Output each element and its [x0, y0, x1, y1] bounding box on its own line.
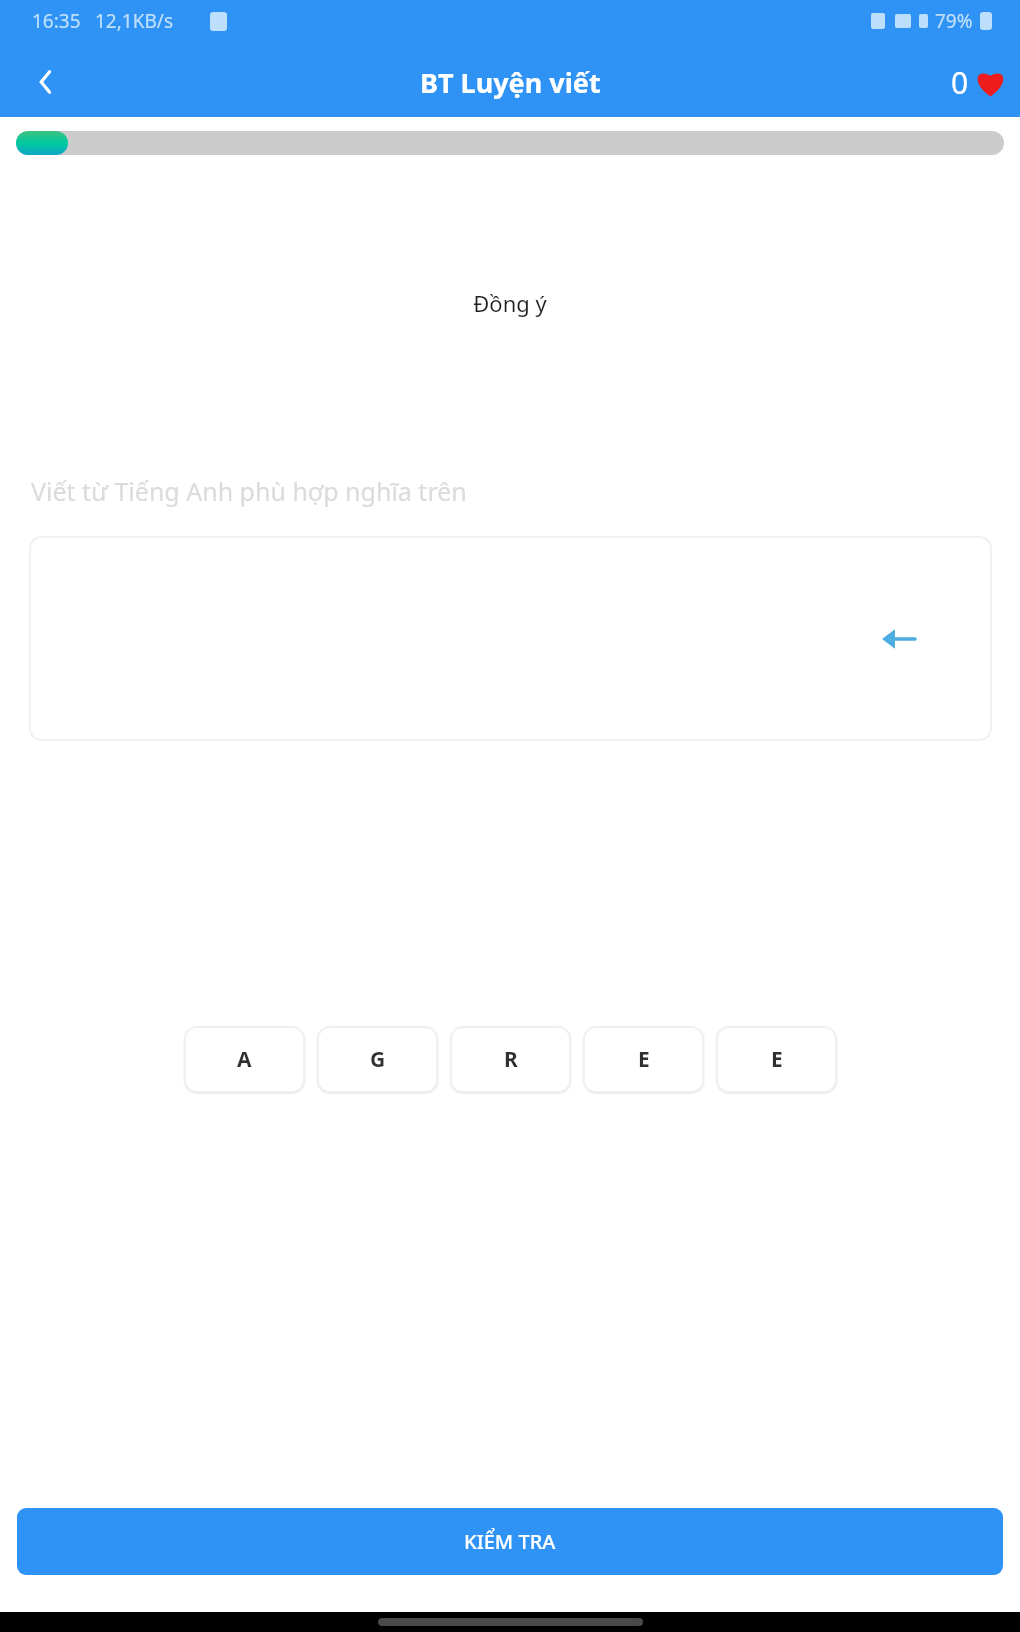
button[interactable]: R	[450, 1026, 571, 1093]
staticText: 0	[951, 62, 969, 103]
staticText: R	[504, 1045, 518, 1074]
button[interactable]: Backspace	[872, 613, 924, 665]
staticText: E	[771, 1045, 783, 1074]
button[interactable]: 0	[951, 62, 1006, 103]
staticText: BT Luyện viết	[420, 64, 601, 101]
staticText: E	[638, 1045, 650, 1074]
button[interactable]: E	[716, 1026, 837, 1093]
button[interactable]: G	[317, 1026, 438, 1093]
button[interactable]: KIỂM TRA	[17, 1508, 1003, 1575]
staticText: G	[370, 1045, 386, 1074]
staticText: KIỂM TRA	[464, 1528, 556, 1555]
button[interactable]: Back	[22, 58, 70, 106]
staticText: A	[237, 1045, 252, 1074]
staticText: 12,1KB/s	[95, 8, 173, 34]
button[interactable]: Backspace	[29, 536, 992, 741]
staticText: Viết từ Tiếng Anh phù hợp nghĩa trên	[31, 474, 467, 508]
button[interactable]: E	[583, 1026, 704, 1093]
staticText: 16:35	[32, 8, 81, 34]
button[interactable]: A	[184, 1026, 305, 1093]
staticText: 79%	[935, 8, 973, 34]
staticText: Đồng ý	[0, 288, 1020, 318]
